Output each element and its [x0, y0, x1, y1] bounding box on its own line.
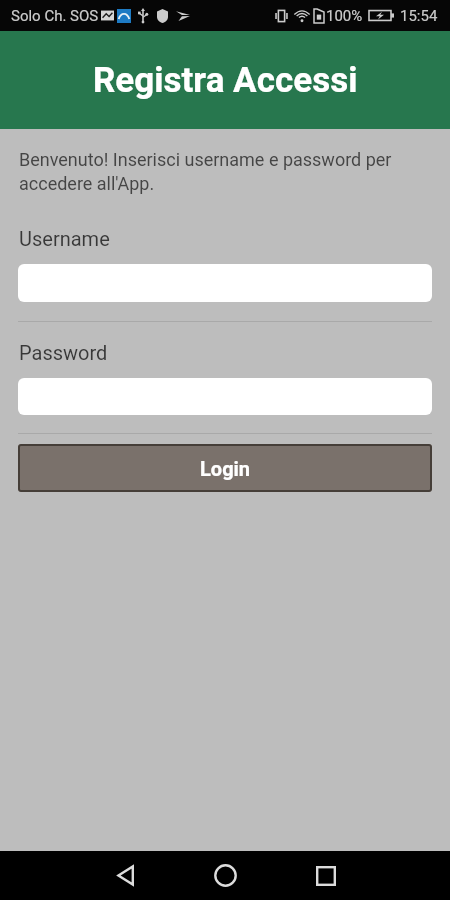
button[interactable]: Login — [18, 444, 432, 492]
staticText: Username — [19, 227, 110, 250]
staticText: Login — [200, 457, 251, 480]
staticText: 100% — [326, 7, 363, 25]
staticText: Registra Accessi — [93, 60, 358, 101]
staticText: Benvenuto! Inserisci username e password… — [19, 149, 404, 194]
button[interactable]: Home — [192, 851, 258, 900]
staticText: Password — [19, 341, 108, 364]
staticText: Solo Ch. SOS — [11, 7, 99, 25]
button[interactable]: Recent apps — [293, 851, 359, 900]
staticText: 15:54 — [400, 7, 438, 25]
button[interactable]: Back — [92, 851, 158, 900]
